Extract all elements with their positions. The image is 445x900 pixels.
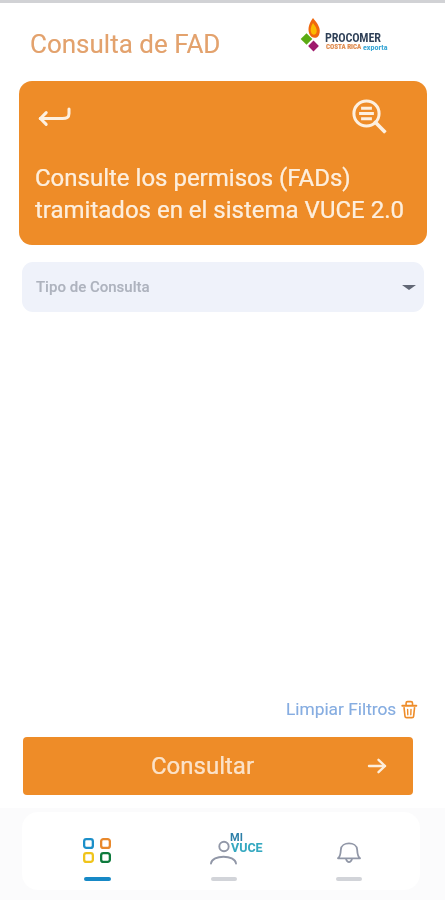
button[interactable]: Mi VUCE [179,812,269,890]
button[interactable]: Notificaciones [304,812,394,890]
button[interactable]: Regresar [33,95,77,139]
staticText: exporta [363,43,388,52]
staticText: PROCOMER [325,31,381,45]
staticText: Limpiar Filtros [286,699,397,719]
button[interactable]: Tipo de Consulta [22,262,424,312]
staticText: Consulta de FAD [30,29,221,59]
staticText: Tipo de Consulta [36,278,150,296]
staticText: tramitados en el sistema VUCE 2.0 [35,196,404,224]
button[interactable]: Consultar [23,737,413,795]
button[interactable]: Buscar [348,95,392,139]
button[interactable]: Limpiar Filtros [284,697,420,721]
staticText: MI [230,831,243,844]
staticText: VUCE [231,840,263,855]
staticText: COSTA RICA [326,43,363,51]
button[interactable]: Inicio [52,812,142,890]
staticText: Consulte los permisos (FADs) [35,164,351,192]
staticText: Consultar [151,752,255,780]
